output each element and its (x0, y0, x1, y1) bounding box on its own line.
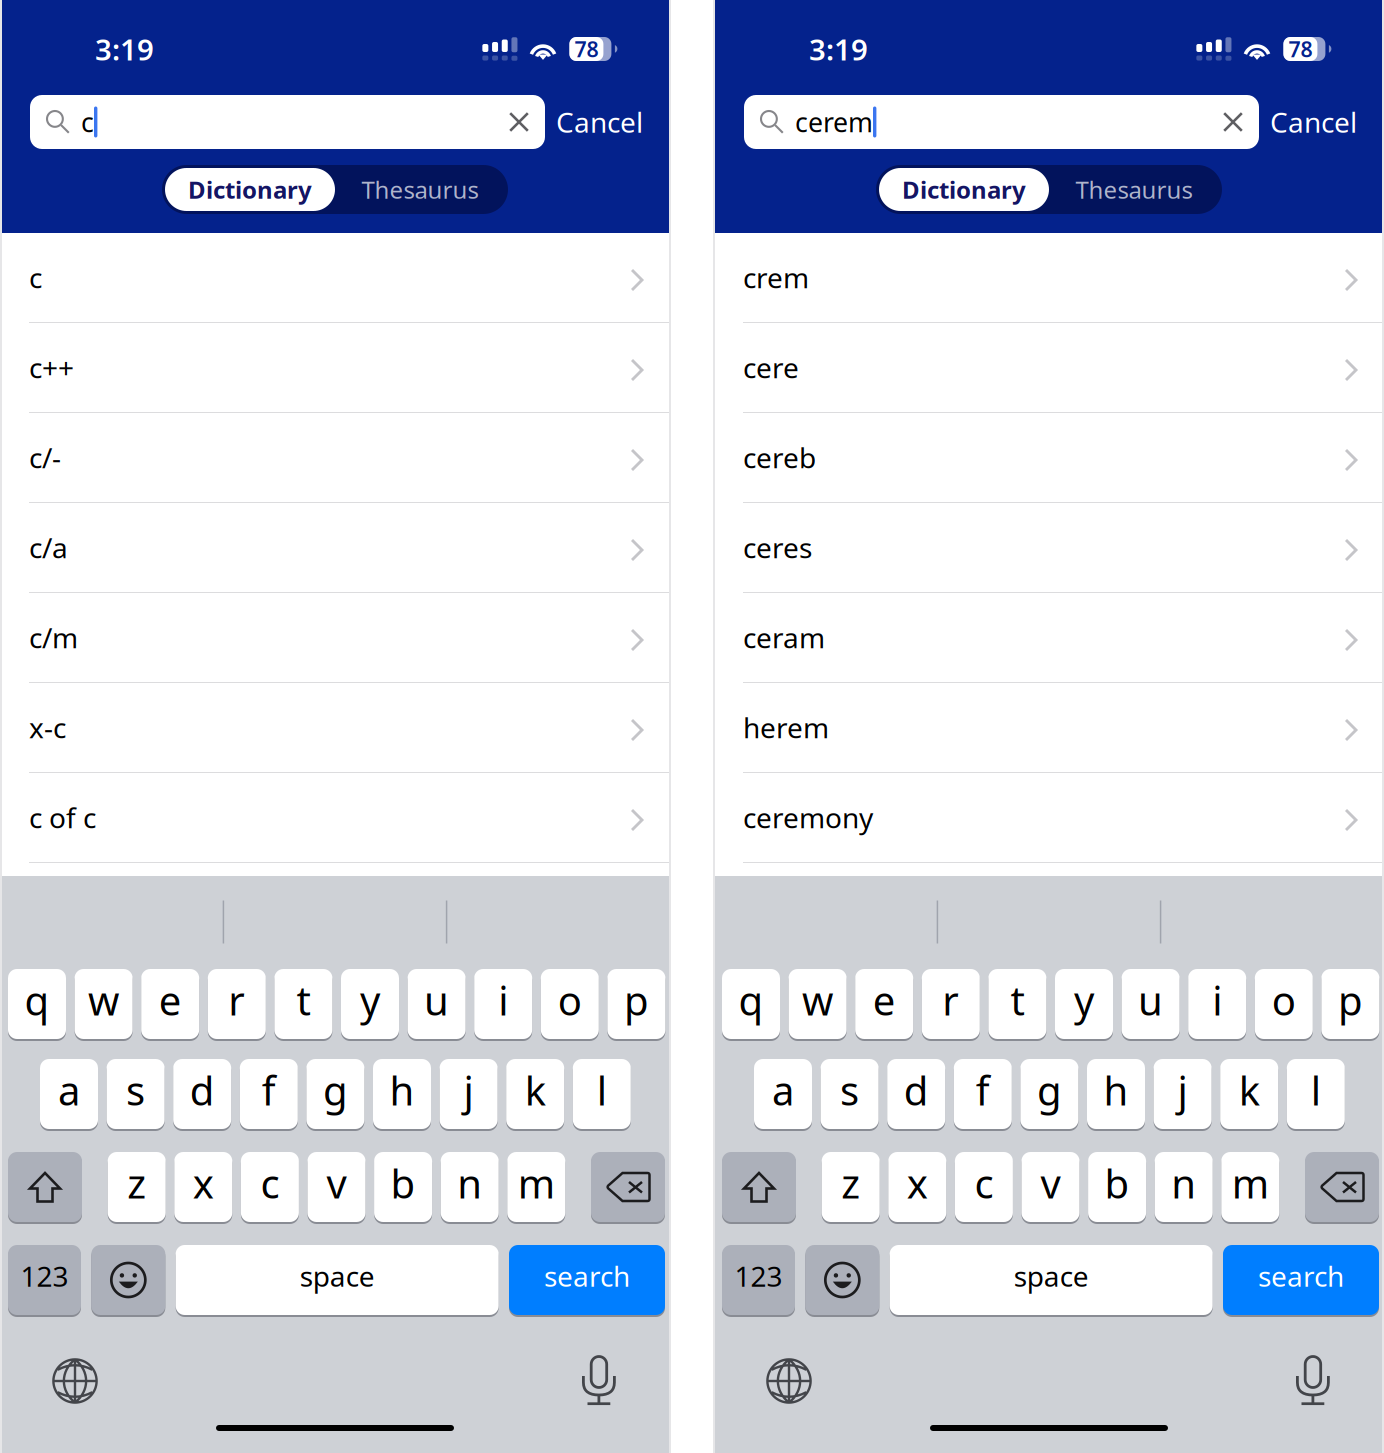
button[interactable]: Cancel (1270, 95, 1357, 149)
button[interactable]: c++ (0, 323, 670, 413)
button[interactable]: Delete (591, 1151, 665, 1223)
button[interactable]: h (1087, 1058, 1145, 1130)
button[interactable]: b (1088, 1151, 1146, 1223)
staticText: a (772, 1063, 794, 1116)
button[interactable]: d (887, 1058, 945, 1130)
button[interactable]: a (754, 1058, 812, 1130)
button[interactable]: y (1055, 968, 1113, 1040)
button[interactable]: i (474, 968, 532, 1040)
button[interactable]: cereb (714, 413, 1384, 503)
staticText: c (81, 104, 94, 140)
button[interactable]: g (306, 1058, 364, 1130)
button[interactable]: Clear text (1207, 95, 1259, 149)
button[interactable]: c (0, 233, 670, 323)
button[interactable]: t (274, 968, 332, 1040)
button[interactable]: Delete (1305, 1151, 1379, 1223)
button[interactable]: d (173, 1058, 231, 1130)
button[interactable]: v (1021, 1151, 1079, 1223)
button[interactable]: p (1321, 968, 1379, 1040)
button[interactable]: j (440, 1058, 498, 1130)
staticText: c (29, 259, 42, 296)
button[interactable]: g (1020, 1058, 1078, 1130)
button[interactable]: o (541, 968, 599, 1040)
button[interactable]: crem (714, 233, 1384, 323)
staticText: v (326, 1156, 346, 1209)
button[interactable]: m (1221, 1151, 1279, 1223)
button[interactable]: k (1220, 1058, 1278, 1130)
button[interactable]: e (855, 968, 913, 1040)
button[interactable]: x (174, 1151, 232, 1223)
button[interactable]: c/a (0, 503, 670, 593)
button[interactable]: x (888, 1151, 946, 1223)
button[interactable]: c/m (0, 593, 670, 683)
button[interactable]: i (1188, 968, 1246, 1040)
button[interactable]: m (507, 1151, 565, 1223)
staticText: c of c (29, 799, 96, 836)
button[interactable]: Thesaurus (1049, 168, 1219, 211)
button[interactable]: w (789, 968, 847, 1040)
button[interactable]: ceres (714, 503, 1384, 593)
button[interactable]: c (241, 1151, 299, 1223)
button[interactable]: cere (714, 323, 1384, 413)
button[interactable]: Dictate (1296, 1356, 1330, 1405)
button[interactable]: 123 (722, 1244, 795, 1316)
button[interactable]: u (408, 968, 466, 1040)
button[interactable]: search (1223, 1244, 1379, 1316)
button[interactable]: ceremony (714, 773, 1384, 863)
button[interactable]: q (8, 968, 66, 1040)
button[interactable]: y (341, 968, 399, 1040)
button[interactable]: u (1122, 968, 1180, 1040)
button[interactable]: Emoji (805, 1244, 879, 1316)
button[interactable]: search (509, 1244, 665, 1316)
button[interactable]: Cancel (556, 95, 643, 149)
button[interactable]: r (922, 968, 980, 1040)
button[interactable]: f (954, 1058, 1012, 1130)
button[interactable]: 123 (8, 1244, 81, 1316)
button[interactable]: e (141, 968, 199, 1040)
button[interactable]: ceram (714, 593, 1384, 683)
button[interactable]: k (506, 1058, 564, 1130)
button[interactable]: space (890, 1244, 1213, 1316)
button[interactable]: z (822, 1151, 880, 1223)
button[interactable]: c (955, 1151, 1013, 1223)
button[interactable]: Next keyboard (762, 1354, 816, 1408)
staticText: y (1074, 973, 1094, 1026)
button[interactable]: space (176, 1244, 499, 1316)
button[interactable]: s (107, 1058, 165, 1130)
button[interactable]: p (607, 968, 665, 1040)
button[interactable]: c/- (0, 413, 670, 503)
button[interactable]: l (573, 1058, 631, 1130)
staticText: q (738, 973, 763, 1026)
button[interactable]: r (208, 968, 266, 1040)
button[interactable]: Shift (722, 1151, 796, 1223)
button[interactable]: z (108, 1151, 166, 1223)
staticText: x (193, 1156, 214, 1209)
button[interactable]: Shift (8, 1151, 82, 1223)
button[interactable]: a (40, 1058, 98, 1130)
button[interactable]: c of c (0, 773, 670, 863)
button[interactable]: Dictionary (165, 168, 335, 211)
button[interactable]: n (441, 1151, 499, 1223)
button[interactable]: Dictate (582, 1356, 616, 1405)
button[interactable]: j (1154, 1058, 1212, 1130)
button[interactable]: Next keyboard (48, 1354, 102, 1408)
button[interactable]: s (821, 1058, 879, 1130)
button[interactable]: herem (714, 683, 1384, 773)
button[interactable]: Clear text (493, 95, 545, 149)
button[interactable]: h (373, 1058, 431, 1130)
button[interactable]: o (1255, 968, 1313, 1040)
button[interactable]: Thesaurus (335, 168, 505, 211)
button[interactable]: v (307, 1151, 365, 1223)
button[interactable]: b (374, 1151, 432, 1223)
button[interactable]: x-c (0, 683, 670, 773)
staticText: c (260, 1156, 279, 1209)
button[interactable]: q (722, 968, 780, 1040)
button[interactable]: t (988, 968, 1046, 1040)
button[interactable]: Dictionary (879, 168, 1049, 211)
button[interactable]: l (1287, 1058, 1345, 1130)
button[interactable]: w (75, 968, 133, 1040)
button[interactable]: f (240, 1058, 298, 1130)
staticText: ceres (743, 529, 812, 566)
button[interactable]: Emoji (91, 1244, 165, 1316)
button[interactable]: n (1155, 1151, 1213, 1223)
